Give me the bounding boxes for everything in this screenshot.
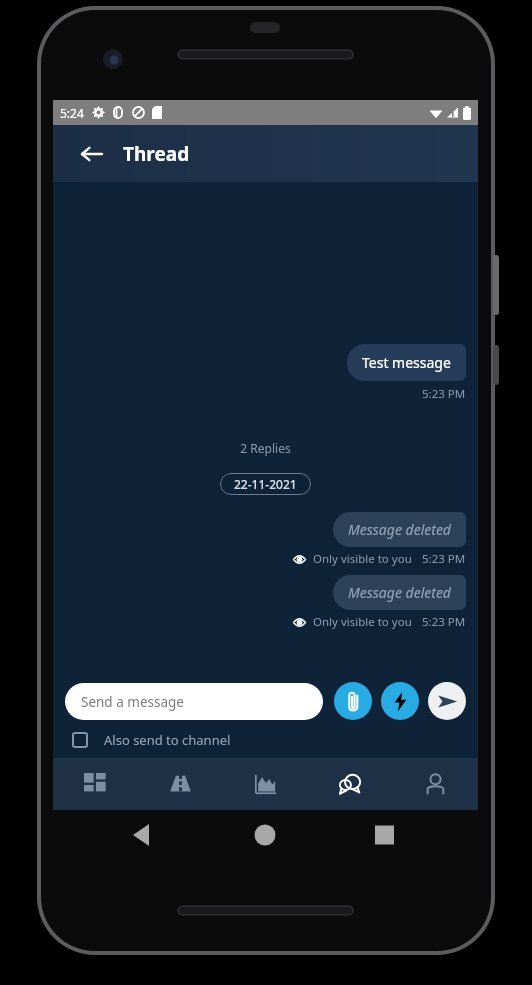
button[interactable]: Message deleted — [333, 575, 466, 610]
staticText: 5:23 PM — [422, 386, 466, 402]
button[interactable]: Quick action — [381, 682, 419, 720]
staticText: 5:24 — [60, 105, 84, 121]
button[interactable]: 22-11-2021 — [220, 473, 311, 495]
staticText: Only visible to you — [313, 551, 412, 567]
staticText: 5:23 PM — [422, 614, 466, 630]
button[interactable]: Chat — [308, 758, 393, 810]
button[interactable]: Send a message — [65, 683, 323, 720]
staticText: Also send to channel — [104, 731, 231, 749]
staticText: Message deleted — [348, 520, 451, 539]
staticText: 22-11-2021 — [234, 476, 297, 492]
button[interactable]: Test message — [347, 344, 466, 381]
staticText: Send a message — [81, 693, 184, 711]
staticText: Thread — [123, 141, 190, 167]
button[interactable]: Attach file — [334, 682, 372, 720]
button[interactable]: Dashboard — [53, 758, 138, 810]
staticText: Test message — [362, 353, 451, 372]
staticText: Message deleted — [348, 583, 451, 602]
button[interactable]: Message deleted — [333, 512, 466, 547]
button[interactable]: Profile — [393, 758, 478, 810]
button[interactable]: Trips — [138, 758, 223, 810]
button[interactable]: Back — [75, 137, 109, 171]
staticText: Only visible to you — [313, 614, 412, 630]
staticText: 2 Replies — [240, 440, 291, 456]
button[interactable]: Send — [428, 682, 466, 720]
button[interactable]: Also send to channel — [65, 729, 231, 751]
staticText: 5:23 PM — [422, 551, 466, 567]
button[interactable]: Reports — [223, 758, 308, 810]
